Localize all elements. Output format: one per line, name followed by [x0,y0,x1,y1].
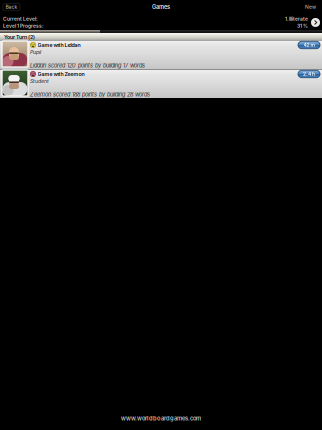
staticText: 2.4 h [303,71,315,77]
button[interactable]: Back [3,3,20,11]
staticText: www.worldboardgames.com [121,415,201,422]
button[interactable]: Game with Liddan [0,41,322,69]
staticText: 1. Illiterate [285,16,308,22]
button[interactable]: Game with Zeemon [0,70,322,98]
staticText: 42 m [303,42,314,48]
button[interactable]: Level details [308,18,320,27]
staticText: Zeemon scored 188 points by building 28 … [30,91,150,98]
staticText: Games [152,4,170,10]
staticText: Game with Liddan [37,42,80,48]
staticText: 31 % [297,23,308,29]
staticText: Back [5,4,17,10]
staticText: New [305,4,316,10]
staticText: Current Level: [3,16,38,22]
staticText: Your Turn (2) [4,34,35,40]
staticText: Liddan scored 120 points by building 17 … [30,62,145,69]
staticText: Game with Zeemon [37,71,84,77]
staticText: Pupil [30,49,41,55]
button[interactable]: New [302,3,319,11]
staticText: Level 1 Progress: [3,23,44,29]
staticText: Student [30,78,49,84]
